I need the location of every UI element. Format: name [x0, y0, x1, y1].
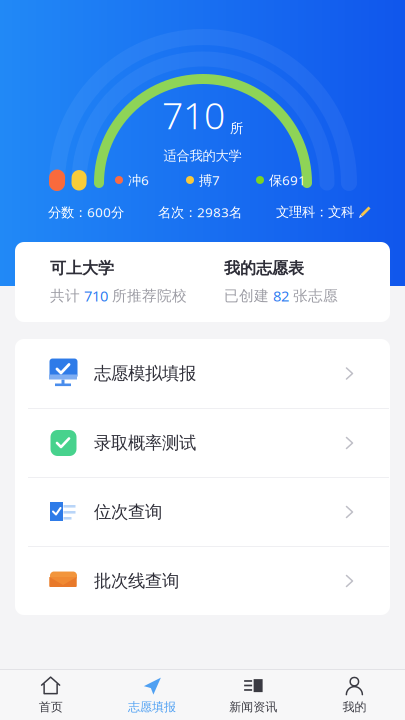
staticText: 我的志愿表 [224, 258, 304, 278]
staticText: 首页 [39, 700, 63, 714]
staticText: 共计 [50, 287, 84, 305]
staticText: 保691 [269, 171, 306, 189]
staticText: 新闻资讯 [229, 700, 277, 714]
button[interactable]: 志愿模拟填报 [15, 339, 390, 408]
staticText: 志愿填报 [128, 700, 176, 714]
button[interactable]: 录取概率测试 [15, 409, 390, 477]
staticText: 张志愿 [289, 287, 338, 305]
staticText: 710 [162, 90, 225, 140]
staticText: 适合我的大学 [163, 148, 241, 164]
button[interactable]: 我的 [304, 670, 405, 720]
staticText: 文理科：文科 [276, 204, 354, 220]
staticText: 所 [230, 120, 243, 137]
staticText: 82 [273, 286, 289, 306]
staticText: 冲6 [128, 171, 149, 189]
staticText: 可上大学 [50, 258, 114, 278]
button[interactable]: 位次查询 [15, 478, 390, 546]
staticText: 批次线查询 [94, 570, 179, 592]
staticText: 分数：600分 [48, 203, 124, 221]
staticText: 所推荐院校 [108, 287, 187, 305]
staticText: 710 [84, 286, 108, 306]
button[interactable]: 志愿填报 [101, 670, 202, 720]
staticText: 志愿模拟填报 [94, 363, 196, 384]
staticText: 录取概率测试 [94, 432, 196, 454]
button[interactable]: 新闻资讯 [202, 670, 304, 720]
staticText: 我的 [342, 700, 366, 714]
staticText: 已创建 [224, 287, 273, 305]
button[interactable]: 我的志愿表 [224, 258, 338, 305]
staticText: 搏7 [199, 171, 220, 189]
button[interactable]: 可上大学 [50, 258, 187, 305]
button[interactable]: 批次线查询 [15, 547, 390, 615]
staticText: 名次：2983名 [158, 203, 242, 221]
staticText: 位次查询 [94, 501, 162, 523]
button[interactable]: 首页 [0, 670, 101, 720]
